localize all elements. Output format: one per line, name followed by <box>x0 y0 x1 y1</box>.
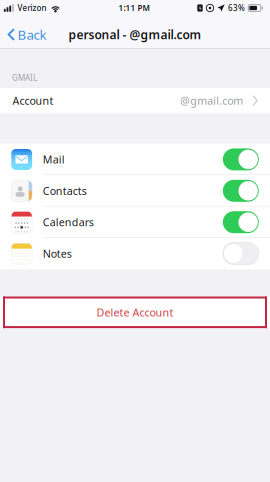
staticText: personal - @gmail.com <box>68 26 201 42</box>
staticText: Verizon <box>17 3 46 13</box>
button[interactable]: Mail <box>0 144 270 175</box>
staticText: 1:11 PM <box>118 3 149 13</box>
staticText: Notes <box>43 246 72 261</box>
staticText: 63% <box>228 3 245 13</box>
staticText: Calendars <box>43 215 94 229</box>
button[interactable]: Contacts <box>0 175 270 206</box>
button[interactable]: Account <box>0 88 270 113</box>
staticText: Mail <box>43 152 65 166</box>
button[interactable]: Notes <box>0 238 270 269</box>
button[interactable]: Back <box>0 20 55 48</box>
staticText: Back <box>18 26 47 43</box>
button[interactable]: Calendars <box>0 206 270 238</box>
button[interactable]: Delete Account <box>0 296 270 328</box>
staticText: @gmail.com <box>180 93 243 108</box>
staticText: Contacts <box>43 184 87 198</box>
staticText: GMAIL <box>12 72 37 83</box>
staticText: Account <box>13 93 54 108</box>
staticText: Delete Account <box>96 305 173 319</box>
